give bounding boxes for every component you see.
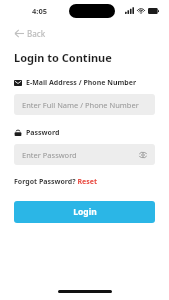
staticText: Enter Full Name / Phone Number — [22, 100, 139, 110]
staticText: Login — [73, 206, 97, 218]
staticText: E-Mail Address / Phone Number — [26, 78, 137, 88]
other: Back — [15, 29, 24, 38]
button[interactable]: Forgot Password? Reset — [14, 175, 97, 189]
button[interactable]: Enter Password — [14, 144, 155, 165]
staticText: 4:05 — [32, 6, 47, 16]
button[interactable]: Login — [14, 201, 155, 223]
button[interactable]: Show password — [137, 149, 149, 161]
button[interactable]: Enter Full Name / Phone Number — [14, 94, 155, 115]
staticText: Back — [27, 28, 46, 39]
button[interactable]: Back — [13, 25, 48, 42]
staticText: Password — [26, 128, 60, 138]
staticText: Enter Password — [22, 150, 77, 160]
staticText: Forgot Password? Reset — [14, 177, 97, 187]
staticText: Login to Continue — [14, 50, 112, 65]
